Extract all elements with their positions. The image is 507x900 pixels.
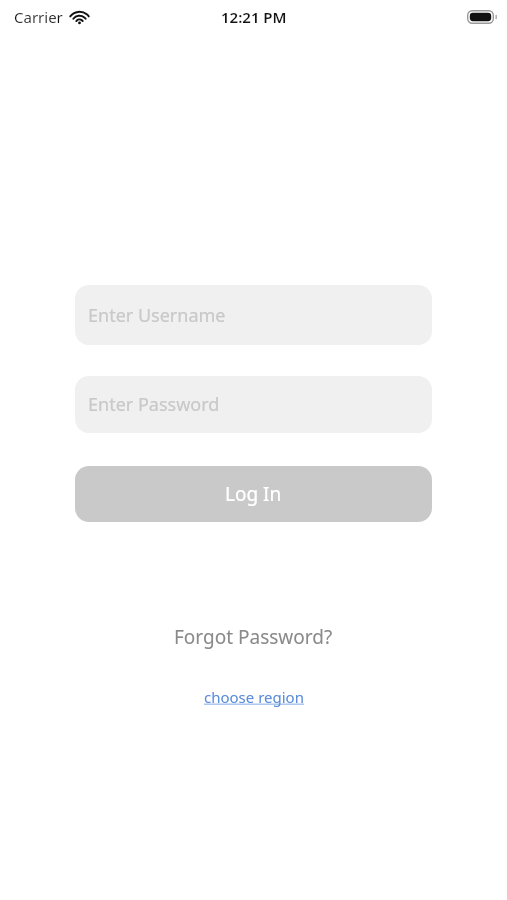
other: Battery full — [467, 10, 497, 24]
staticText: choose region — [204, 687, 304, 707]
button[interactable]: Forgot Password? — [164, 620, 343, 654]
staticText: Forgot Password? — [174, 624, 333, 650]
button[interactable]: choose region — [196, 684, 312, 710]
staticText: 12:21 PM — [221, 7, 287, 27]
staticText: Enter Username — [88, 303, 226, 328]
button[interactable]: Enter Username — [75, 285, 432, 345]
button[interactable]: Log In — [75, 466, 432, 522]
staticText: Carrier — [14, 7, 63, 27]
button[interactable]: Enter Password — [75, 376, 432, 433]
staticText: Log In — [225, 481, 282, 507]
staticText: Enter Password — [88, 392, 220, 417]
other: Wi-Fi signal — [70, 10, 89, 24]
